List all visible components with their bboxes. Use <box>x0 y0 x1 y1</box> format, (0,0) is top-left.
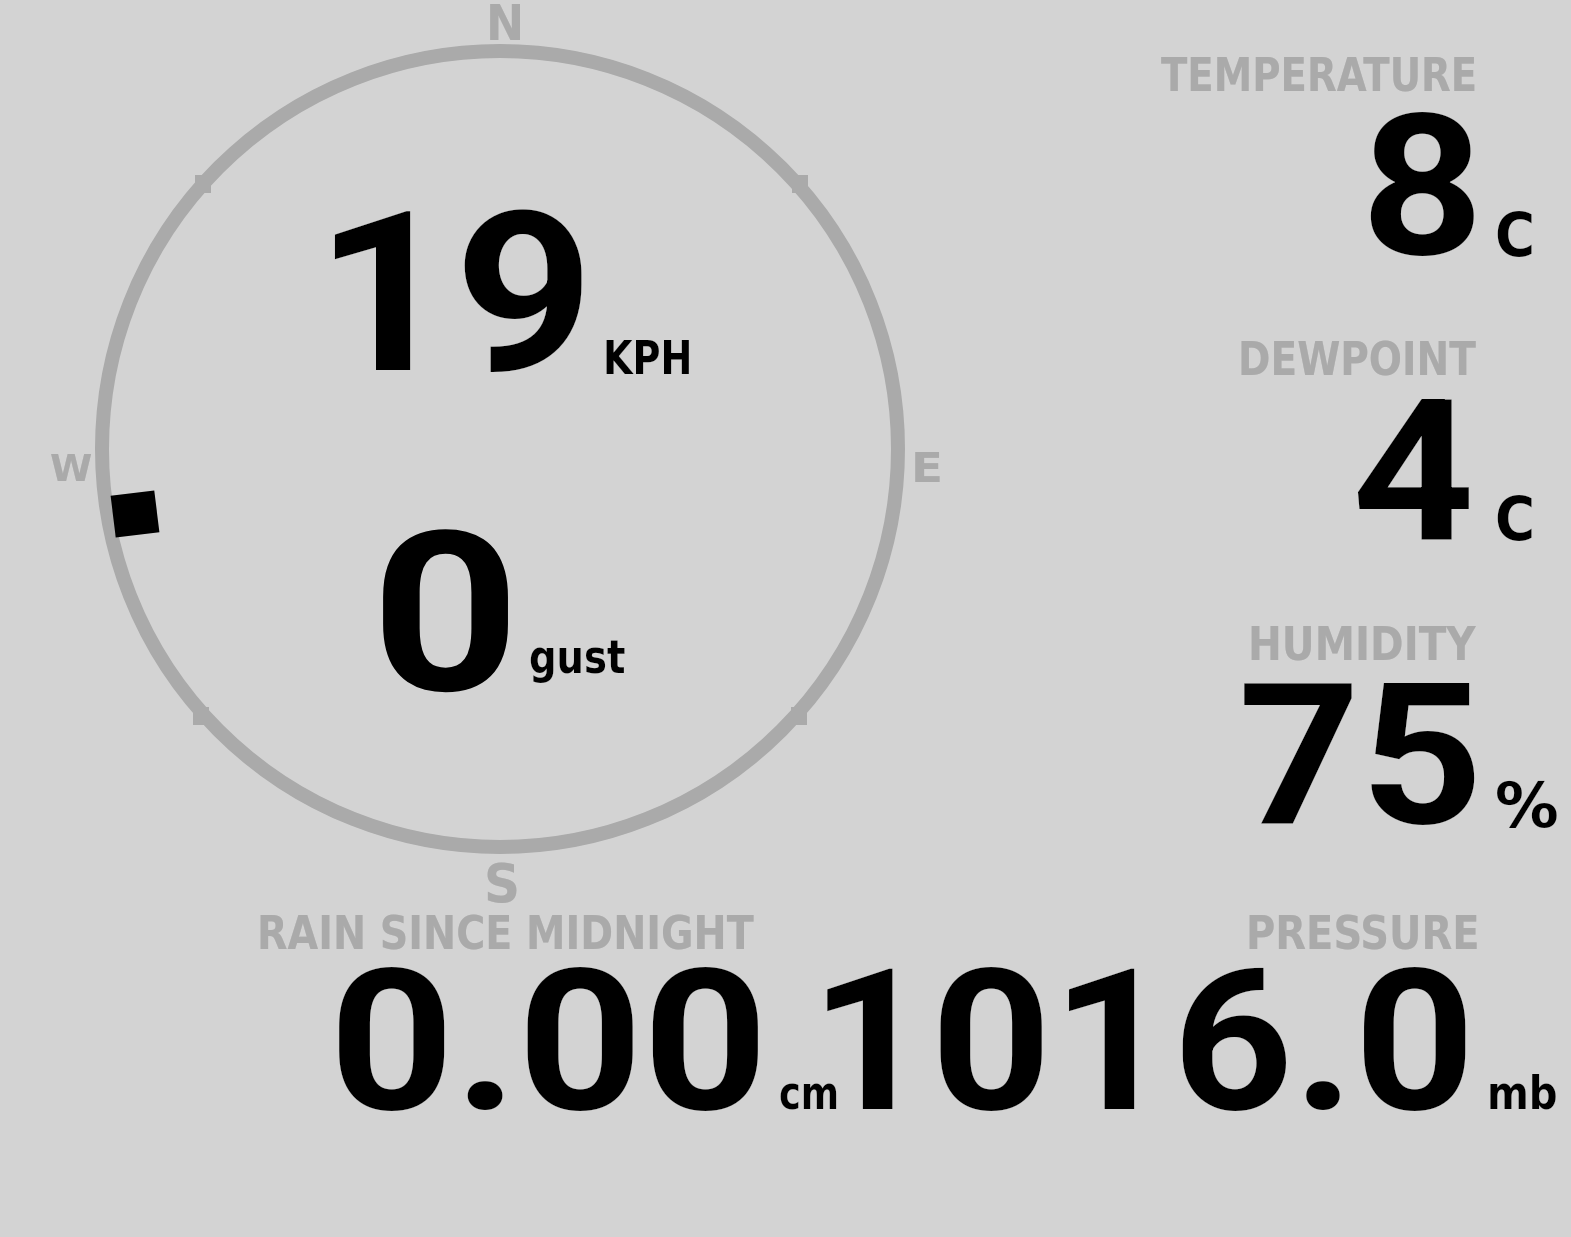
staticText: 0 <box>371 483 520 744</box>
button[interactable]: Dewpoint 4 C <box>1100 310 1571 580</box>
button[interactable]: Wind 19 KPH, gust 0, from west <box>60 10 940 890</box>
button[interactable]: Pressure 1016.0 mb <box>870 895 1570 1135</box>
staticText: 75 <box>1238 641 1483 871</box>
staticText: 8 <box>1361 72 1484 302</box>
staticText: gust <box>529 630 626 684</box>
staticText: cm <box>779 1066 839 1120</box>
staticText: % <box>1495 769 1559 841</box>
staticText: N <box>486 0 525 52</box>
button[interactable]: Humidity 75 percent <box>1100 600 1571 870</box>
staticText: C <box>1495 200 1535 270</box>
staticText: RAIN SINCE MIDNIGHT <box>257 906 754 960</box>
staticText: S <box>484 853 521 915</box>
staticText: HUMIDITY <box>1248 617 1476 671</box>
staticText: W <box>50 446 93 490</box>
button[interactable]: Temperature 8 C <box>1100 30 1571 290</box>
staticText: 4 <box>1352 358 1475 588</box>
staticText: C <box>1495 484 1535 554</box>
staticText: E <box>911 445 943 492</box>
staticText: TEMPERATURE <box>1161 48 1478 102</box>
staticText: 0.00 <box>329 927 769 1157</box>
staticText: DEWPOINT <box>1238 332 1477 386</box>
staticText: mb <box>1487 1066 1558 1120</box>
staticText: PRESSURE <box>1246 906 1480 960</box>
staticText: 19 <box>315 163 594 424</box>
button[interactable]: Rain since midnight 0.00 cm <box>240 895 860 1135</box>
staticText: KPH <box>603 331 693 385</box>
staticText: 1016.0 <box>810 927 1476 1157</box>
